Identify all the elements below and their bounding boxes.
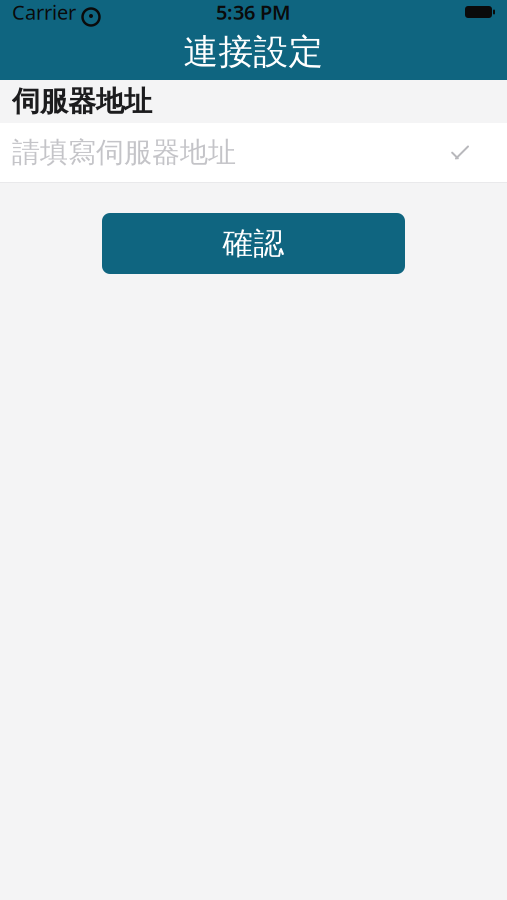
button[interactable]: 確認: [102, 213, 405, 274]
staticText: 連接設定: [183, 31, 323, 73]
staticText: Carrier: [12, 0, 76, 25]
staticText: 5:36 PM: [216, 0, 291, 25]
button[interactable]: 請填寫伺服器地址: [0, 123, 507, 182]
staticText: 請填寫伺服器地址: [12, 135, 236, 170]
staticText: 確認: [222, 225, 284, 262]
staticText: 伺服器地址: [12, 84, 152, 119]
